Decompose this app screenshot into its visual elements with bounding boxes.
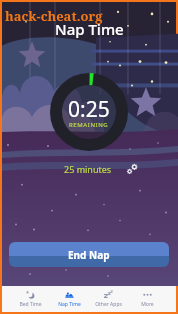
button[interactable]: Other Apps: [89, 286, 128, 312]
staticText: hack-cheat.org: [5, 7, 103, 25]
staticText: Other Apps: [95, 301, 122, 308]
button[interactable]: End Nap: [9, 242, 169, 267]
staticText: 25 minutes: [64, 163, 112, 175]
staticText: 0:25: [68, 95, 110, 124]
staticText: Nap Time: [58, 301, 81, 308]
staticText: Nap Time: [55, 19, 124, 39]
button[interactable]: More: [128, 286, 167, 312]
staticText: REMAINING: [69, 121, 109, 129]
staticText: End Nap: [68, 248, 110, 262]
other: Settings: [126, 163, 138, 175]
staticText: More: [141, 301, 154, 308]
button[interactable]: Bed Time: [11, 286, 50, 312]
button[interactable]: 25 minutes: [60, 161, 142, 177]
staticText: Bed Time: [19, 301, 42, 308]
button[interactable]: Nap Time: [50, 286, 89, 312]
